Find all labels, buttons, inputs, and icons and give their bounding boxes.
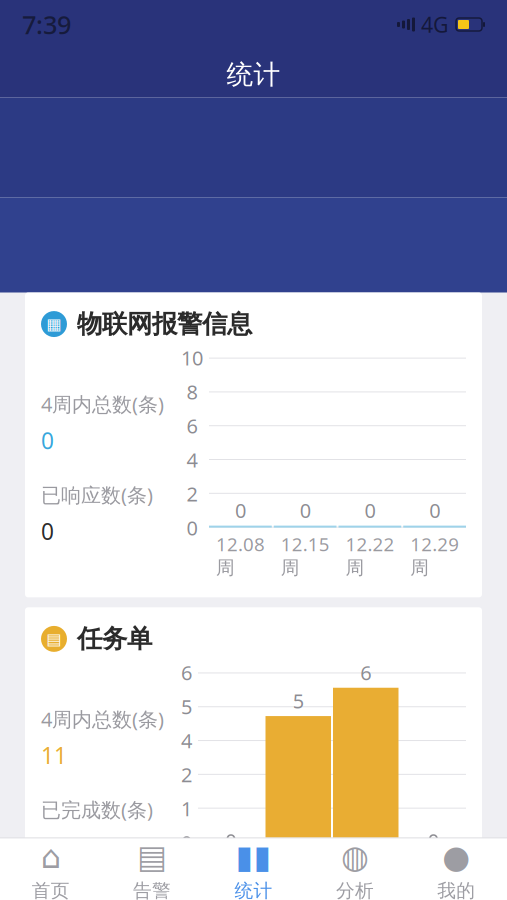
staticText: 物联网报警信息 (77, 308, 252, 340)
staticText: ⌂ (41, 839, 61, 875)
staticText: 8 (186, 378, 197, 405)
staticText: 6 (181, 659, 192, 686)
staticText: 已完成数(条) (41, 796, 153, 823)
staticText: 12.08周 (206, 846, 255, 894)
button[interactable]: ▮▮ (203, 838, 304, 900)
staticText: 12.15周 (281, 532, 330, 579)
staticText: 统计 (234, 879, 272, 900)
staticText: 0 (186, 514, 197, 541)
staticText: ◍ (341, 839, 369, 875)
button[interactable]: ▤ (25, 607, 482, 900)
staticText: 12.22周 (345, 532, 394, 579)
staticText: 4 (186, 446, 197, 473)
staticText: 7:39 (22, 8, 71, 41)
staticText: 已响应数(条) (41, 481, 153, 508)
staticText: 0 (364, 497, 375, 524)
staticText: 我的 (437, 879, 475, 900)
staticText: 2 (186, 480, 197, 507)
staticText: 12.22周 (341, 846, 390, 894)
staticText: 任务单 (77, 623, 152, 654)
staticText: 0 (41, 425, 54, 455)
staticText: 0 (41, 516, 54, 546)
staticText: 6 (186, 412, 197, 439)
staticText: 0 (429, 497, 440, 524)
staticText: 0 (428, 827, 439, 854)
staticText: 4 (181, 727, 192, 754)
staticText: 12.29周 (410, 532, 459, 579)
staticText: 1 (181, 795, 192, 822)
staticText: ▤ (46, 630, 61, 648)
staticText: 6 (360, 659, 371, 686)
staticText: 12.08周 (216, 532, 265, 579)
button[interactable]: ● (406, 838, 507, 900)
staticText: 12.29周 (409, 846, 458, 894)
staticText: 4G (421, 10, 449, 39)
staticText: ● (442, 839, 470, 875)
staticText: 0 (181, 829, 192, 856)
staticText: 4周内总数(条) (41, 391, 164, 417)
staticText: ▤ (137, 839, 167, 875)
staticText: 统计 (226, 58, 280, 91)
button[interactable]: ⌂ (0, 838, 101, 900)
staticText: ▮▮ (235, 839, 271, 875)
staticText: 告警 (133, 879, 171, 900)
staticText: 4周内总数(条) (41, 706, 164, 732)
staticText: 5 (293, 687, 304, 714)
staticText: 分析 (336, 879, 374, 900)
button[interactable]: ▦ (25, 292, 482, 597)
staticText: 首页 (32, 879, 70, 900)
staticText: 5 (181, 693, 192, 720)
staticText: 0 (235, 497, 246, 524)
staticText: 0 (41, 831, 54, 861)
staticText: 0 (300, 497, 311, 524)
staticText: ▦ (46, 315, 61, 333)
staticText: 0 (225, 827, 236, 854)
staticText: 11 (41, 740, 67, 770)
staticText: 2 (181, 761, 192, 788)
staticText: 10 (181, 344, 203, 371)
button[interactable]: ◍ (304, 838, 406, 900)
button[interactable]: ▤ (101, 838, 203, 900)
